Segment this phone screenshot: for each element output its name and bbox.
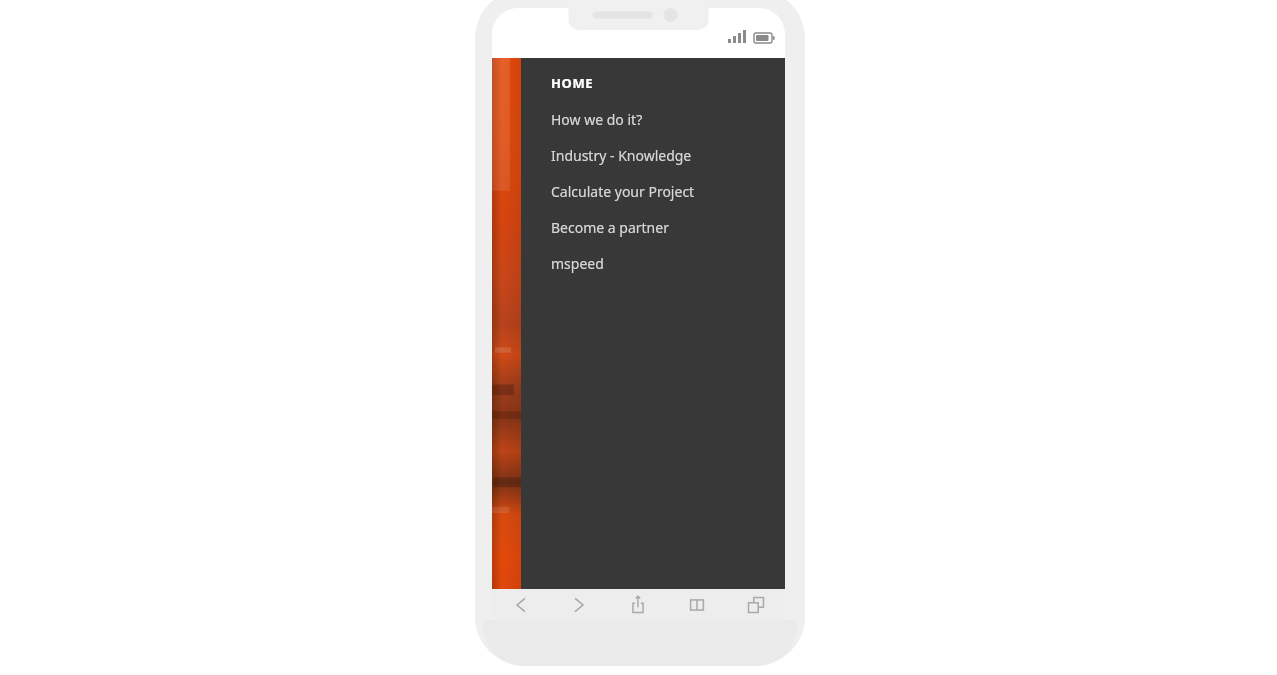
button[interactable]: How we do it? xyxy=(492,106,785,133)
button[interactable]: Become a partner xyxy=(492,214,785,241)
button[interactable]: HOME xyxy=(492,69,785,96)
button[interactable]: Calculate your Project xyxy=(492,178,785,205)
staticText: Become a partner xyxy=(551,218,669,237)
staticText: Industry - Knowledge xyxy=(551,146,692,165)
button[interactable]: Industry - Knowledge xyxy=(492,142,785,169)
button[interactable]: Bookmarks xyxy=(667,589,726,620)
button[interactable]: mspeed xyxy=(492,250,785,277)
button[interactable]: Tabs xyxy=(726,589,785,620)
staticText: How we do it? xyxy=(551,110,643,129)
staticText: mspeed xyxy=(551,254,604,273)
button[interactable]: Back xyxy=(492,589,550,620)
staticText: Calculate your Project xyxy=(551,182,695,201)
button[interactable]: Forward xyxy=(550,589,608,620)
staticText: HOME xyxy=(551,74,594,92)
button[interactable]: Share xyxy=(608,589,667,620)
